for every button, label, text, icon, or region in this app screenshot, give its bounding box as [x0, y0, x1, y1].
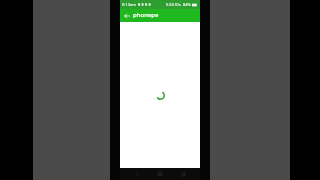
button[interactable]: Recent apps	[177, 169, 189, 179]
staticText: phonepe	[133, 11, 159, 19]
button[interactable]: Navigate up	[120, 9, 133, 22]
staticText: 5.53 K/s 84%	[166, 2, 191, 7]
button[interactable]: Home	[154, 169, 166, 179]
staticText: 9:13am	[122, 2, 136, 7]
